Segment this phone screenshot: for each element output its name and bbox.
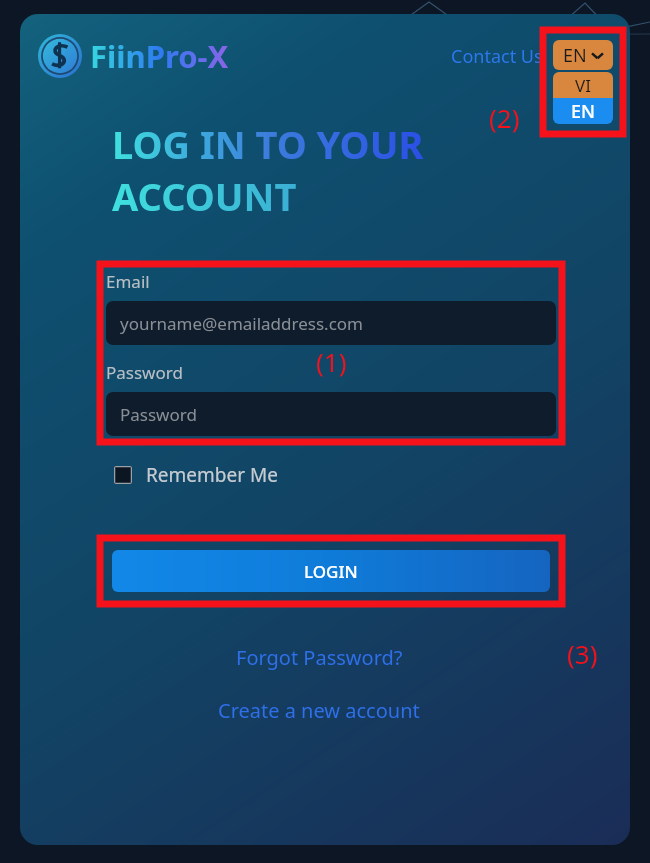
staticText: Contact Us (451, 44, 543, 69)
staticText: LOG IN TO YOUR (112, 118, 424, 170)
staticText: (2) (489, 100, 520, 135)
staticText: LOGIN (304, 560, 358, 583)
staticText: Create a new account (218, 697, 420, 724)
button[interactable]: Password (106, 392, 556, 436)
button[interactable]: Create a new account (212, 691, 426, 730)
button[interactable]: EN (553, 98, 613, 124)
button[interactable]: VI (553, 72, 613, 98)
button[interactable]: Forgot Password? (230, 638, 409, 677)
staticText: FiinPro-X (90, 35, 229, 77)
staticText: VI (575, 74, 591, 97)
button[interactable]: yourname@emailaddress.com (106, 301, 556, 345)
staticText: ACCOUNT (112, 170, 297, 222)
staticText: (1) (316, 344, 347, 379)
staticText: (3) (567, 636, 598, 671)
staticText: EN (563, 43, 587, 68)
staticText: EN (571, 99, 595, 124)
button[interactable]: Contact Us (445, 38, 549, 75)
staticText: Forgot Password? (236, 644, 403, 671)
staticText: Password (106, 361, 183, 384)
staticText: yourname@emailaddress.com (120, 312, 363, 335)
staticText: Email (106, 270, 150, 293)
button[interactable]: Remember Me (112, 456, 280, 494)
staticText: Password (120, 403, 197, 426)
staticText: Remember Me (146, 462, 278, 488)
button[interactable]: Language EN (553, 40, 613, 70)
button[interactable]: LOGIN (112, 550, 550, 592)
